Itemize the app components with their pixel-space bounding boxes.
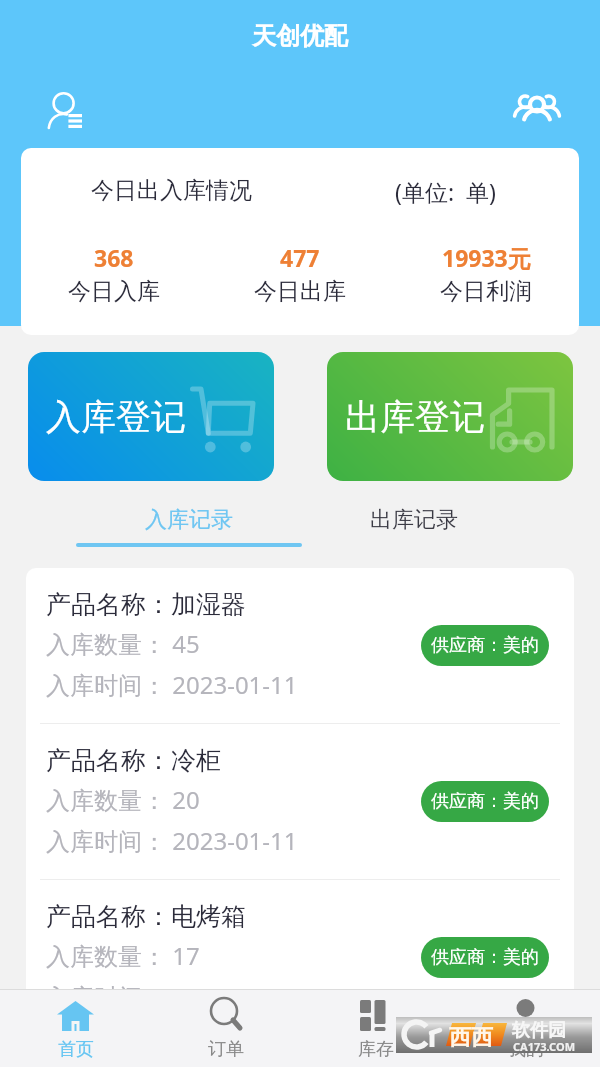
staticText: 产品名称：冷柜 (46, 745, 221, 776)
button[interactable]: 库存 (300, 989, 450, 1067)
staticText: 供应商：美的 (431, 946, 539, 969)
button[interactable]: Contacts (48, 92, 82, 126)
staticText: 产品名称：加湿器 (46, 589, 246, 620)
staticText: 天创优配 (0, 21, 600, 51)
staticText: 今日出库 (254, 277, 346, 306)
staticText: 西西 (449, 1024, 493, 1052)
button[interactable]: 入库登记 (28, 352, 274, 481)
staticText: 368 (94, 242, 134, 273)
staticText: 产品名称：电烤箱 (46, 901, 246, 932)
button[interactable]: 入库记录 (76, 481, 302, 551)
staticText: CA173.COM (513, 1039, 576, 1054)
staticText: 入库时间： 2023-01-11 (46, 668, 298, 701)
staticText: 入库登记 (46, 395, 186, 439)
staticText: 今日入库 (68, 277, 160, 306)
button[interactable]: 产品名称：加湿器 (26, 568, 574, 723)
staticText: 订单 (208, 1038, 244, 1061)
staticText: 入库数量： 45 (46, 627, 200, 660)
button[interactable]: 供应商：美的 (421, 937, 549, 978)
button[interactable]: 产品名称：电烤箱 (26, 880, 574, 989)
staticText: 我的 (508, 1038, 544, 1061)
button[interactable]: 首页 (0, 989, 150, 1067)
button[interactable]: 出库登记 (327, 352, 573, 481)
staticText: 软件园 (512, 1019, 566, 1042)
staticText: (单位: 单) (395, 176, 496, 207)
button[interactable]: 供应商：美的 (421, 625, 549, 666)
staticText: 19933元 (442, 242, 531, 273)
staticText: 入库时间： 2023-01-11 (46, 824, 298, 857)
staticText: 今日利润 (440, 277, 532, 306)
button[interactable]: Team (515, 94, 559, 130)
staticText: 入库记录 (145, 506, 233, 534)
staticText: 库存 (358, 1038, 394, 1061)
staticText: 入库数量： 20 (46, 783, 200, 816)
staticText: 477 (280, 242, 320, 273)
button[interactable]: 我的 (450, 989, 600, 1067)
staticText: 入库时间： 2023-01-11 (46, 980, 298, 989)
button[interactable]: 出库记录 (301, 481, 527, 551)
staticText: 入库数量： 17 (46, 939, 200, 972)
staticText: 今日出入库情况 (91, 176, 252, 205)
staticText: 出库登记 (345, 395, 485, 439)
staticText: 出库记录 (370, 506, 458, 534)
staticText: 供应商：美的 (431, 790, 539, 813)
button[interactable]: 供应商：美的 (421, 781, 549, 822)
button[interactable]: 订单 (150, 989, 300, 1067)
staticText: 首页 (58, 1038, 94, 1061)
button[interactable]: 产品名称：冷柜 (26, 724, 574, 879)
staticText: 供应商：美的 (431, 634, 539, 657)
